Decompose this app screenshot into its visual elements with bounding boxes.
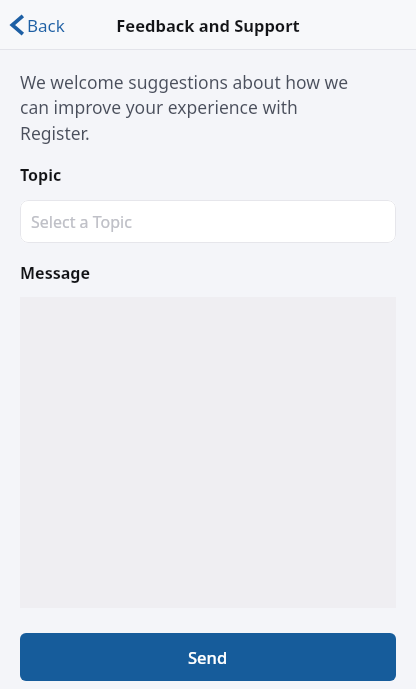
staticText: Select a Topic (31, 211, 132, 233)
staticText: Feedback and Support (116, 14, 300, 36)
button[interactable]: Select a Topic (20, 200, 396, 243)
staticText: Topic (20, 164, 62, 186)
staticText: We welcome suggestions about how we can … (20, 70, 372, 146)
staticText: Back (27, 14, 65, 37)
staticText: Send (188, 646, 228, 668)
button[interactable]: Send (20, 633, 396, 681)
button[interactable]: Back (0, 0, 77, 50)
staticText: Message (20, 262, 90, 284)
